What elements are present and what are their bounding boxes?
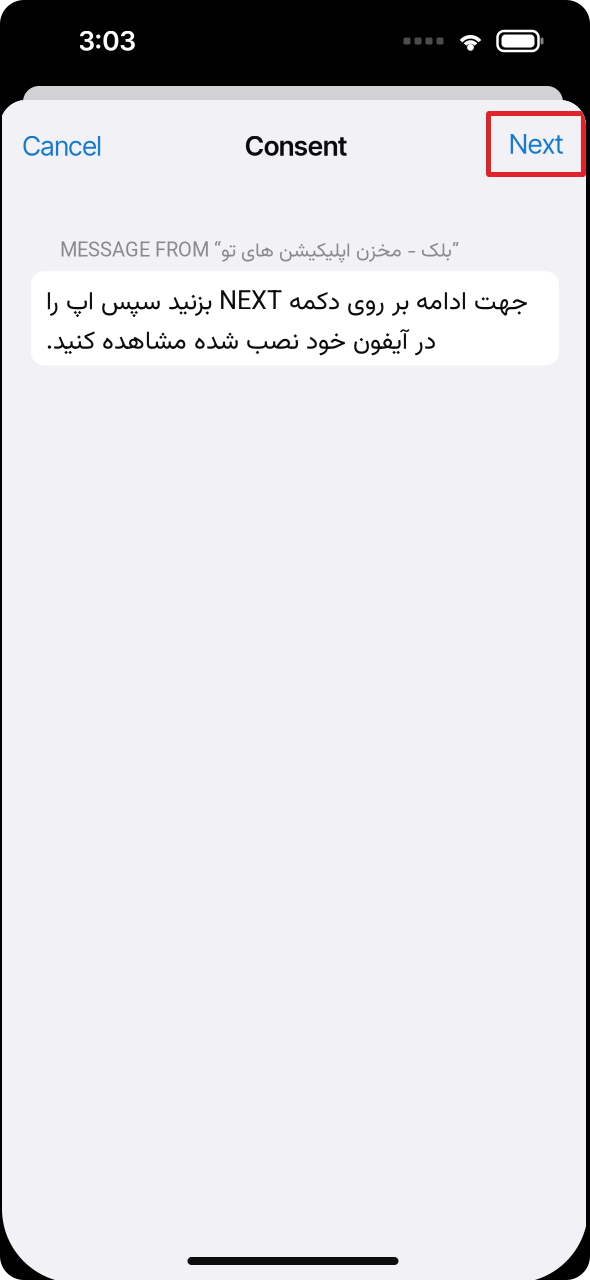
button[interactable]: Next: [486, 111, 586, 177]
staticText: 3:03: [78, 25, 135, 57]
staticText: MESSAGE FROM “بلک - مخزن اپلیکیشن های تو…: [60, 236, 459, 267]
staticText: جهت ادامه بر روی دکمه NEXT بزنید سپس اپ …: [46, 283, 528, 362]
staticText: Consent: [245, 130, 347, 162]
button[interactable]: Cancel: [2, 115, 122, 177]
staticText: Next: [509, 128, 563, 160]
staticText: Cancel: [22, 130, 101, 162]
